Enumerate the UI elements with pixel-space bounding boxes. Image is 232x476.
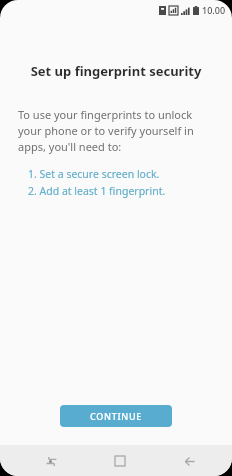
- staticText: 2. Add at least 1 fingerprint.: [28, 184, 166, 198]
- button[interactable]: CONTINUE: [60, 405, 172, 427]
- button[interactable]: Home: [107, 448, 133, 474]
- staticText: To use your fingerprints to unlock your …: [18, 107, 216, 154]
- staticText: 1. Set a secure screen lock.: [28, 167, 160, 181]
- button[interactable]: Menu indicator: [40, 451, 60, 471]
- button[interactable]: Back: [176, 448, 202, 474]
- staticText: CONTINUE: [90, 410, 143, 422]
- staticText: 10.00: [202, 4, 226, 16]
- staticText: Set up fingerprint security: [16, 62, 216, 80]
- button[interactable]: Recent apps: [38, 448, 64, 474]
